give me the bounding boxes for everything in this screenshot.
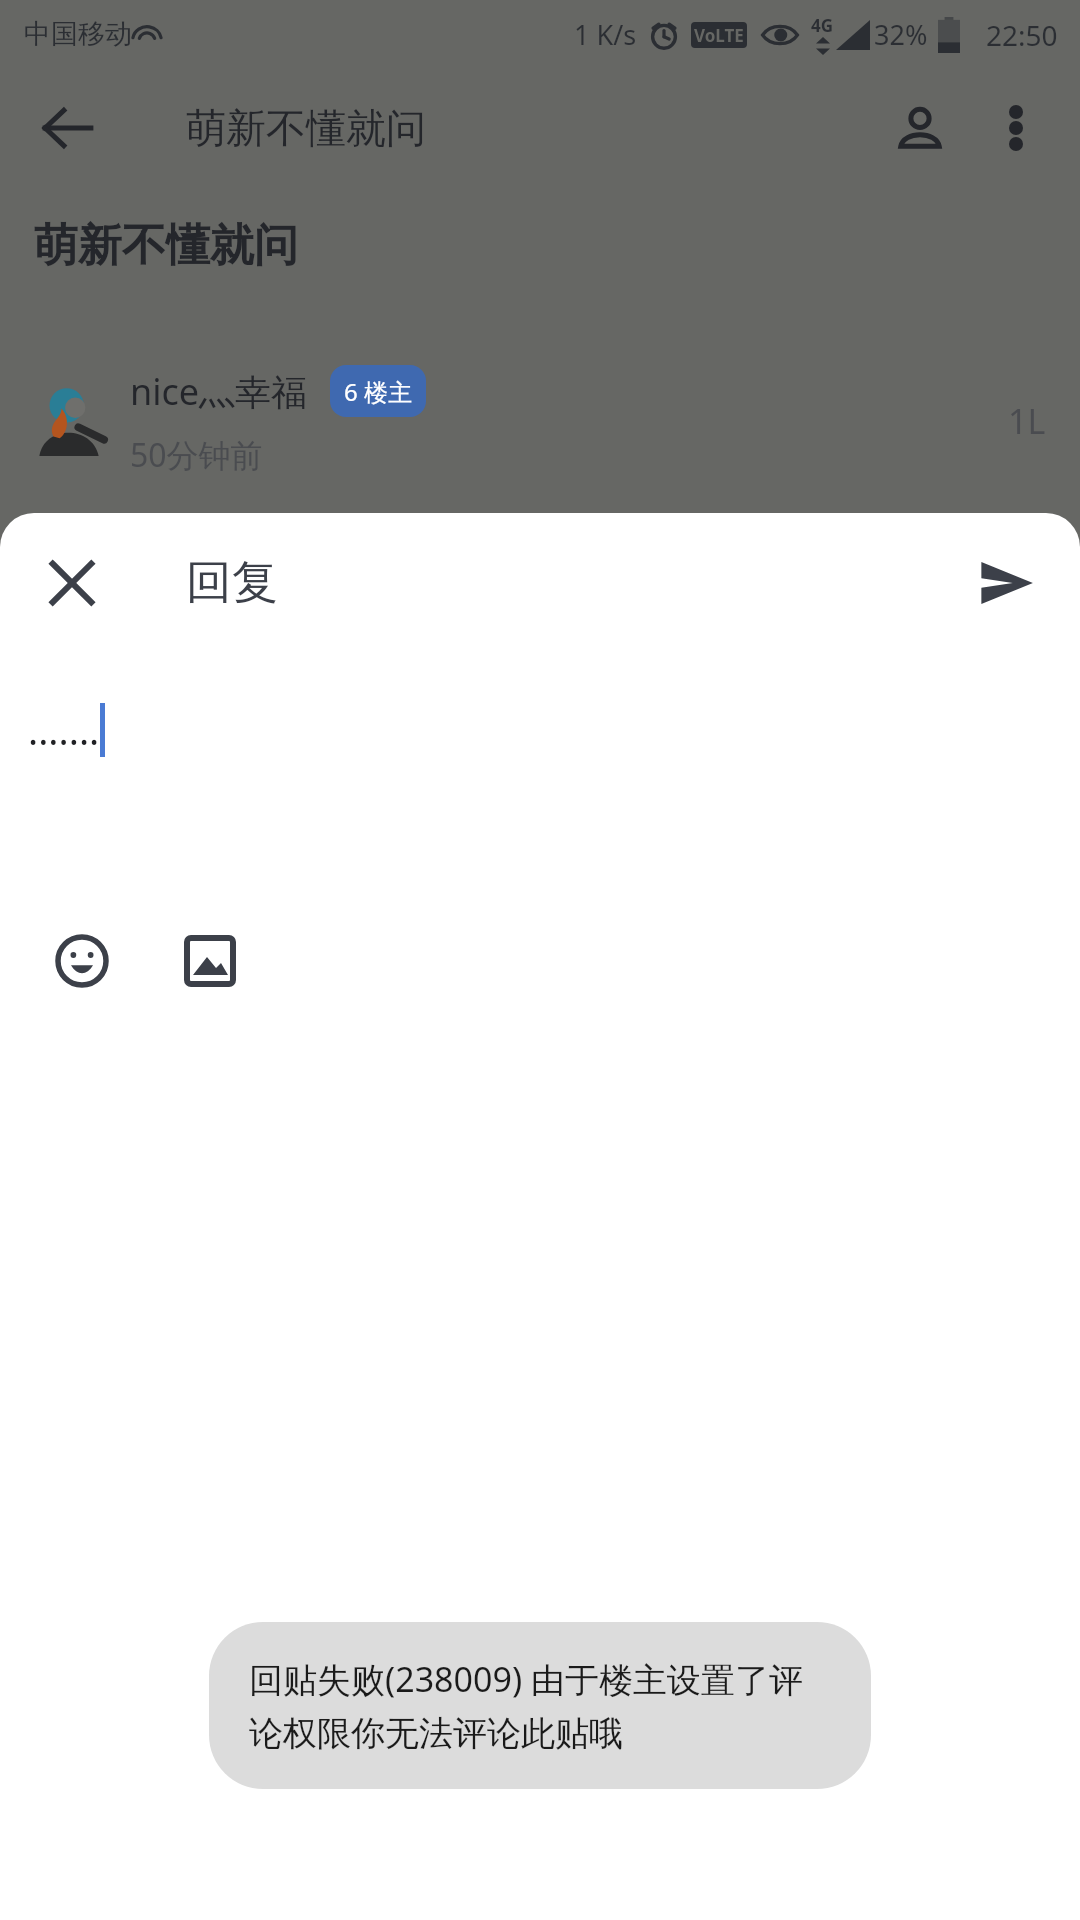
staticText: VoLTE: [694, 24, 744, 47]
button[interactable]: Send: [958, 535, 1054, 631]
staticText: nice灬幸福: [130, 367, 308, 416]
staticText: 萌新不懂就问: [34, 218, 298, 273]
staticText: 50分钟前: [130, 433, 263, 477]
staticText: 回复: [186, 554, 278, 612]
staticText: 22:50: [986, 16, 1058, 54]
staticText: 1 K/s: [574, 16, 637, 53]
button[interactable]: Profile: [872, 80, 968, 176]
button[interactable]: Insert image: [162, 913, 258, 1009]
staticText: 1L: [1008, 398, 1046, 444]
staticText: 中国移动: [24, 17, 132, 51]
staticText: 萌新不懂就问: [186, 103, 426, 153]
button[interactable]: Emoji: [34, 913, 130, 1009]
button[interactable]: Close: [24, 535, 120, 631]
staticText: 6 楼主: [344, 375, 412, 408]
button[interactable]: More options: [968, 80, 1064, 176]
staticText: .......: [28, 704, 100, 756]
staticText: 回贴失败(238009) 由于楼主设置了评论权限你无法评论此贴哦: [249, 1656, 831, 1755]
button[interactable]: .......: [0, 653, 1080, 953]
button[interactable]: Back: [20, 80, 116, 176]
staticText: 4G: [811, 14, 834, 37]
staticText: 32%: [874, 16, 928, 53]
